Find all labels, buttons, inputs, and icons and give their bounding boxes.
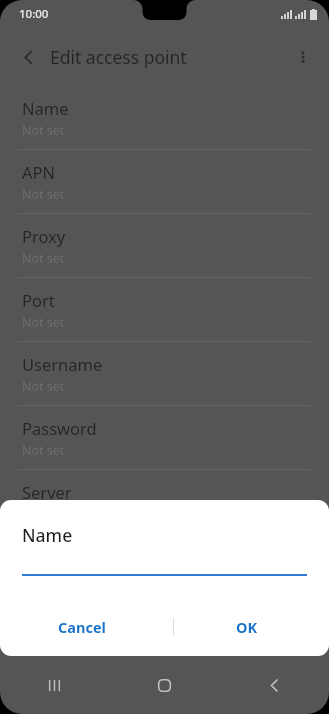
staticText: Username [22,353,103,375]
staticText: APN [22,161,56,183]
staticText: Not set [22,186,65,203]
button[interactable]: OK [164,609,329,645]
staticText: Proxy [22,225,66,247]
staticText: Not set [22,122,65,139]
button[interactable]: Name [0,86,329,149]
staticText: 10:00 [19,6,49,22]
button[interactable]: Server [0,470,329,533]
staticText: Edit access point [50,45,187,69]
staticText: Port [22,289,55,311]
staticText: Password [22,417,97,439]
staticText: Name [22,97,69,119]
button[interactable]: Username [0,342,329,405]
button[interactable]: Recent apps [0,657,109,714]
staticText: Cancel [58,617,106,637]
button[interactable]: Proxy [0,214,329,277]
staticText: Not set [22,314,65,331]
button[interactable]: APN [0,150,329,213]
button[interactable]: Back [8,37,48,77]
button[interactable]: Back [219,657,329,714]
button[interactable]: Cancel [0,609,164,645]
staticText: Name [22,523,73,547]
button[interactable]: Password [0,406,329,469]
button[interactable]: Port [0,278,329,341]
staticText: Server [22,481,72,503]
staticText: OK [236,617,258,637]
button[interactable]: Home [109,657,219,714]
staticText: Not set [22,250,65,267]
staticText: Not set [22,378,65,395]
staticText: Not set [22,442,65,459]
button[interactable]: More options [283,37,323,77]
